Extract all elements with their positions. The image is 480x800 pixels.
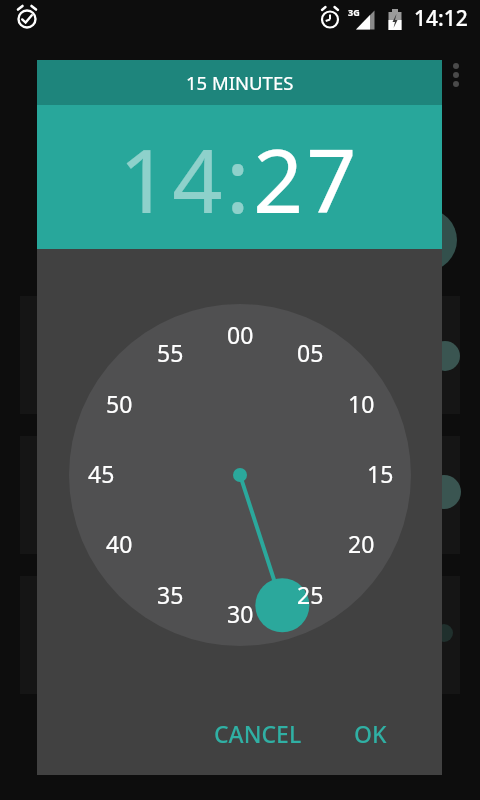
staticText: 30	[227, 598, 254, 628]
staticText: :	[226, 119, 253, 239]
staticText: 50	[106, 388, 133, 418]
staticText: 55	[157, 337, 184, 367]
staticText: CANCEL	[214, 718, 302, 749]
staticText: 15 MINUTES	[186, 70, 294, 95]
staticText: 00	[227, 319, 254, 349]
staticText: 15	[367, 458, 394, 488]
staticText: 45	[88, 458, 115, 488]
staticText: 05	[297, 337, 324, 367]
staticText: 20	[348, 528, 375, 558]
staticText: 3G	[348, 6, 360, 18]
button[interactable]: CANCEL	[213, 709, 303, 757]
staticText: 10	[348, 388, 375, 418]
staticText: 35	[157, 579, 184, 609]
staticText: 14	[119, 119, 226, 239]
staticText: 27	[253, 119, 360, 239]
button[interactable]: OK	[338, 709, 402, 757]
staticText: 25	[297, 579, 324, 609]
staticText: 40	[106, 528, 133, 558]
staticText: 14:12	[414, 4, 468, 33]
staticText: OK	[354, 718, 387, 749]
